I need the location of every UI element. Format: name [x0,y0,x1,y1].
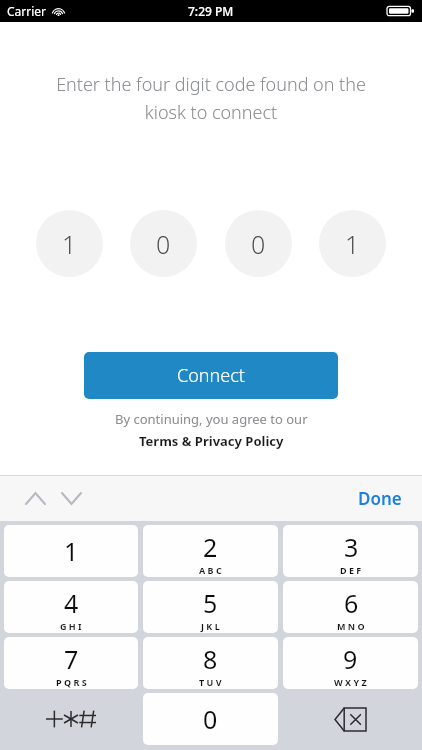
staticText: 0 [251,227,266,261]
button[interactable]: 3 [283,525,418,577]
staticText: 7 [64,642,79,676]
button[interactable]: 1 [4,525,138,577]
staticText: G H I [60,620,82,632]
button[interactable]: 1 [319,210,386,277]
staticText: 5 [203,586,218,620]
staticText: 8 [203,642,218,676]
staticText: A B C [199,564,222,576]
staticText: 0 [203,702,218,736]
button[interactable]: Backspace [283,693,418,745]
button[interactable]: 0 [143,693,278,745]
button[interactable]: 5 [143,581,278,633]
staticText: 1 [345,227,360,261]
button[interactable]: 1 [36,210,103,277]
staticText: M N O [337,620,365,632]
staticText: W X Y Z [334,676,367,688]
button[interactable]: Next field [54,481,88,515]
button[interactable]: 2 [143,525,278,577]
button[interactable]: Done [352,481,408,516]
button[interactable]: 0 [225,210,292,277]
staticText: Terms & Privacy Policy [139,432,284,450]
staticText: D E F [340,564,362,576]
staticText: 0 [156,227,171,261]
button[interactable]: Connect [84,352,338,399]
button[interactable]: Previous field [18,481,52,515]
staticText: Enter the four digit code found on the k… [24,72,398,124]
staticText: 3 [344,530,359,564]
staticText: J K L [201,620,220,632]
staticText: 7:29 PM [188,3,234,19]
button[interactable]: 6 [283,581,418,633]
staticText: Done [358,487,402,510]
staticText: 1 [62,227,77,261]
button[interactable]: Terms & Privacy Policy [139,432,284,450]
staticText: 1 [64,534,79,568]
button[interactable]: 7 [4,637,138,689]
staticText: 4 [64,586,79,620]
staticText: 6 [344,586,359,620]
staticText: T U V [199,676,222,688]
button[interactable]: 4 [4,581,138,633]
staticText: By continuing, you agree to our [115,410,308,428]
button[interactable]: 9 [283,637,418,689]
staticText: P Q R S [56,676,87,688]
staticText: 2 [203,530,218,564]
staticText: Carrier [7,3,47,19]
button[interactable]: Plus star hash [4,693,138,745]
button[interactable]: 0 [130,210,197,277]
button[interactable]: 8 [143,637,278,689]
staticText: Connect [177,363,245,388]
staticText: 9 [343,642,358,676]
